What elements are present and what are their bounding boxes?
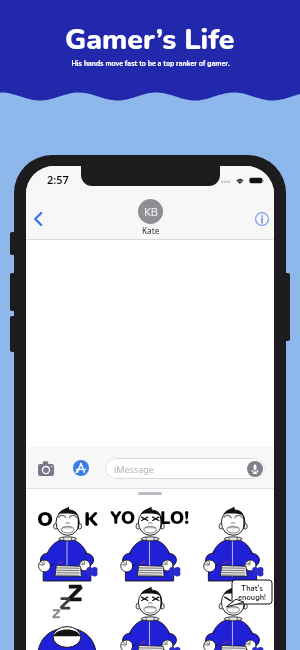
staticText: Gamer’s Life — [65, 20, 235, 59]
staticText: LO! — [160, 506, 190, 531]
button[interactable]: Sticker 5 — [108, 577, 191, 650]
button[interactable]: Sticker 2 — [108, 497, 191, 577]
button[interactable]: Dictate — [247, 461, 263, 477]
button[interactable]: App Store — [67, 454, 95, 482]
staticText: YO — [110, 506, 136, 531]
staticText: Kate — [142, 225, 160, 236]
button[interactable]: Conversation details — [250, 207, 274, 231]
staticText: KB — [144, 204, 158, 219]
staticText: iMessage — [114, 463, 154, 475]
staticText: 2:57 — [47, 172, 69, 187]
button[interactable]: Sticker 6 — [191, 577, 274, 650]
button[interactable]: Camera — [32, 454, 60, 482]
staticText: O — [37, 506, 54, 533]
button[interactable]: Sticker 1 — [26, 497, 108, 577]
button[interactable]: iMessage — [105, 458, 265, 479]
button[interactable]: Sticker 3 — [191, 497, 274, 577]
staticText: That’s enough! — [238, 583, 266, 602]
staticText: His hands move fast to be a top ranker o… — [71, 59, 230, 69]
button[interactable]: Sticker 4 — [26, 577, 108, 650]
button[interactable]: Back — [26, 207, 50, 231]
staticText: K — [84, 506, 99, 533]
button[interactable]: KB — [138, 199, 163, 236]
